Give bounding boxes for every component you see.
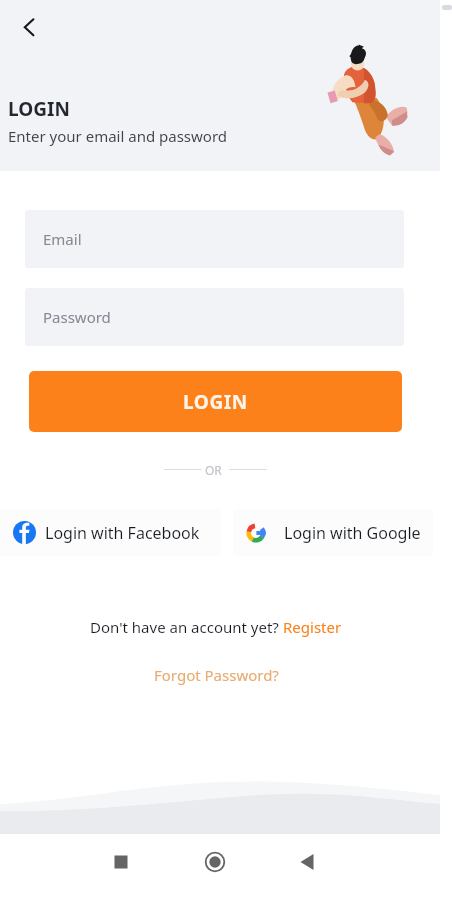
staticText: Email	[43, 229, 82, 249]
staticText: LOGIN	[8, 96, 70, 122]
button[interactable]: Home	[195, 842, 235, 882]
button[interactable]: Recents	[101, 842, 141, 882]
staticText: OR	[205, 462, 222, 478]
button[interactable]: Forgot Password?	[154, 665, 279, 685]
button[interactable]: Login with Facebook	[0, 509, 221, 556]
button[interactable]: Back	[9, 11, 41, 43]
button[interactable]: Register	[283, 617, 342, 637]
button[interactable]: Login with Google	[233, 509, 433, 556]
staticText: Don't have an account yet?	[90, 617, 283, 637]
staticText: Password	[43, 307, 111, 327]
button[interactable]: LOGIN	[29, 371, 402, 432]
button[interactable]: Back	[287, 842, 327, 882]
staticText: Enter your email and password	[8, 126, 228, 146]
button[interactable]: Email	[25, 210, 404, 268]
staticText: LOGIN	[183, 389, 248, 415]
button[interactable]: Password	[25, 288, 404, 346]
staticText: Login with Facebook	[45, 522, 200, 544]
staticText: Login with Google	[284, 522, 421, 544]
